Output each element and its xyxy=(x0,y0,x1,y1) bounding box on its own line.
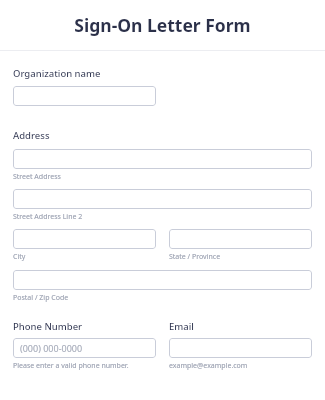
staticText: Email xyxy=(169,320,194,333)
staticText: Postal / Zip Code xyxy=(13,293,69,303)
button[interactable] xyxy=(13,189,312,209)
staticText: Street Address Line 2 xyxy=(13,212,83,222)
staticText: Phone Number xyxy=(13,320,83,333)
staticText: State / Province xyxy=(169,252,221,262)
staticText: Address xyxy=(13,129,50,142)
staticText: Sign-On Letter Form xyxy=(74,13,251,37)
staticText: City xyxy=(13,252,26,262)
staticText: (000) 000-0000 xyxy=(20,342,83,354)
button[interactable] xyxy=(13,229,156,249)
button[interactable] xyxy=(169,338,312,358)
button[interactable] xyxy=(13,86,156,106)
staticText: Please enter a valid phone number. xyxy=(13,361,129,371)
staticText: example@example.com xyxy=(169,361,248,371)
button[interactable] xyxy=(169,229,312,249)
button[interactable]: (000) 000-0000 xyxy=(13,338,156,358)
staticText: Street Address xyxy=(13,172,61,182)
button[interactable] xyxy=(13,270,312,290)
button[interactable] xyxy=(13,149,312,169)
staticText: Organization name xyxy=(13,67,101,80)
